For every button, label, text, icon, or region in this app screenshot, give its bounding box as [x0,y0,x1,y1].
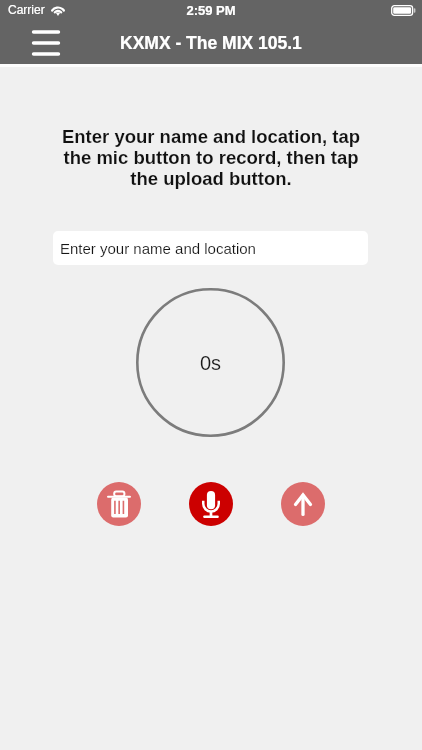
staticText: 0s [200,352,222,374]
button[interactable]: Delete recording [97,482,141,526]
staticText: Carrier [8,3,45,16]
button[interactable]: Record [189,482,233,526]
button[interactable]: Enter your name and location [53,231,368,265]
staticText: Enter your name and location [60,240,256,257]
staticText: 2:59 PM [0,3,422,18]
staticText: Enter your name and location, tap the mi… [0,126,422,189]
button[interactable]: Menu [20,29,72,57]
button[interactable]: Upload [281,482,325,526]
staticText: KXMX - The MIX 105.1 [120,33,302,53]
